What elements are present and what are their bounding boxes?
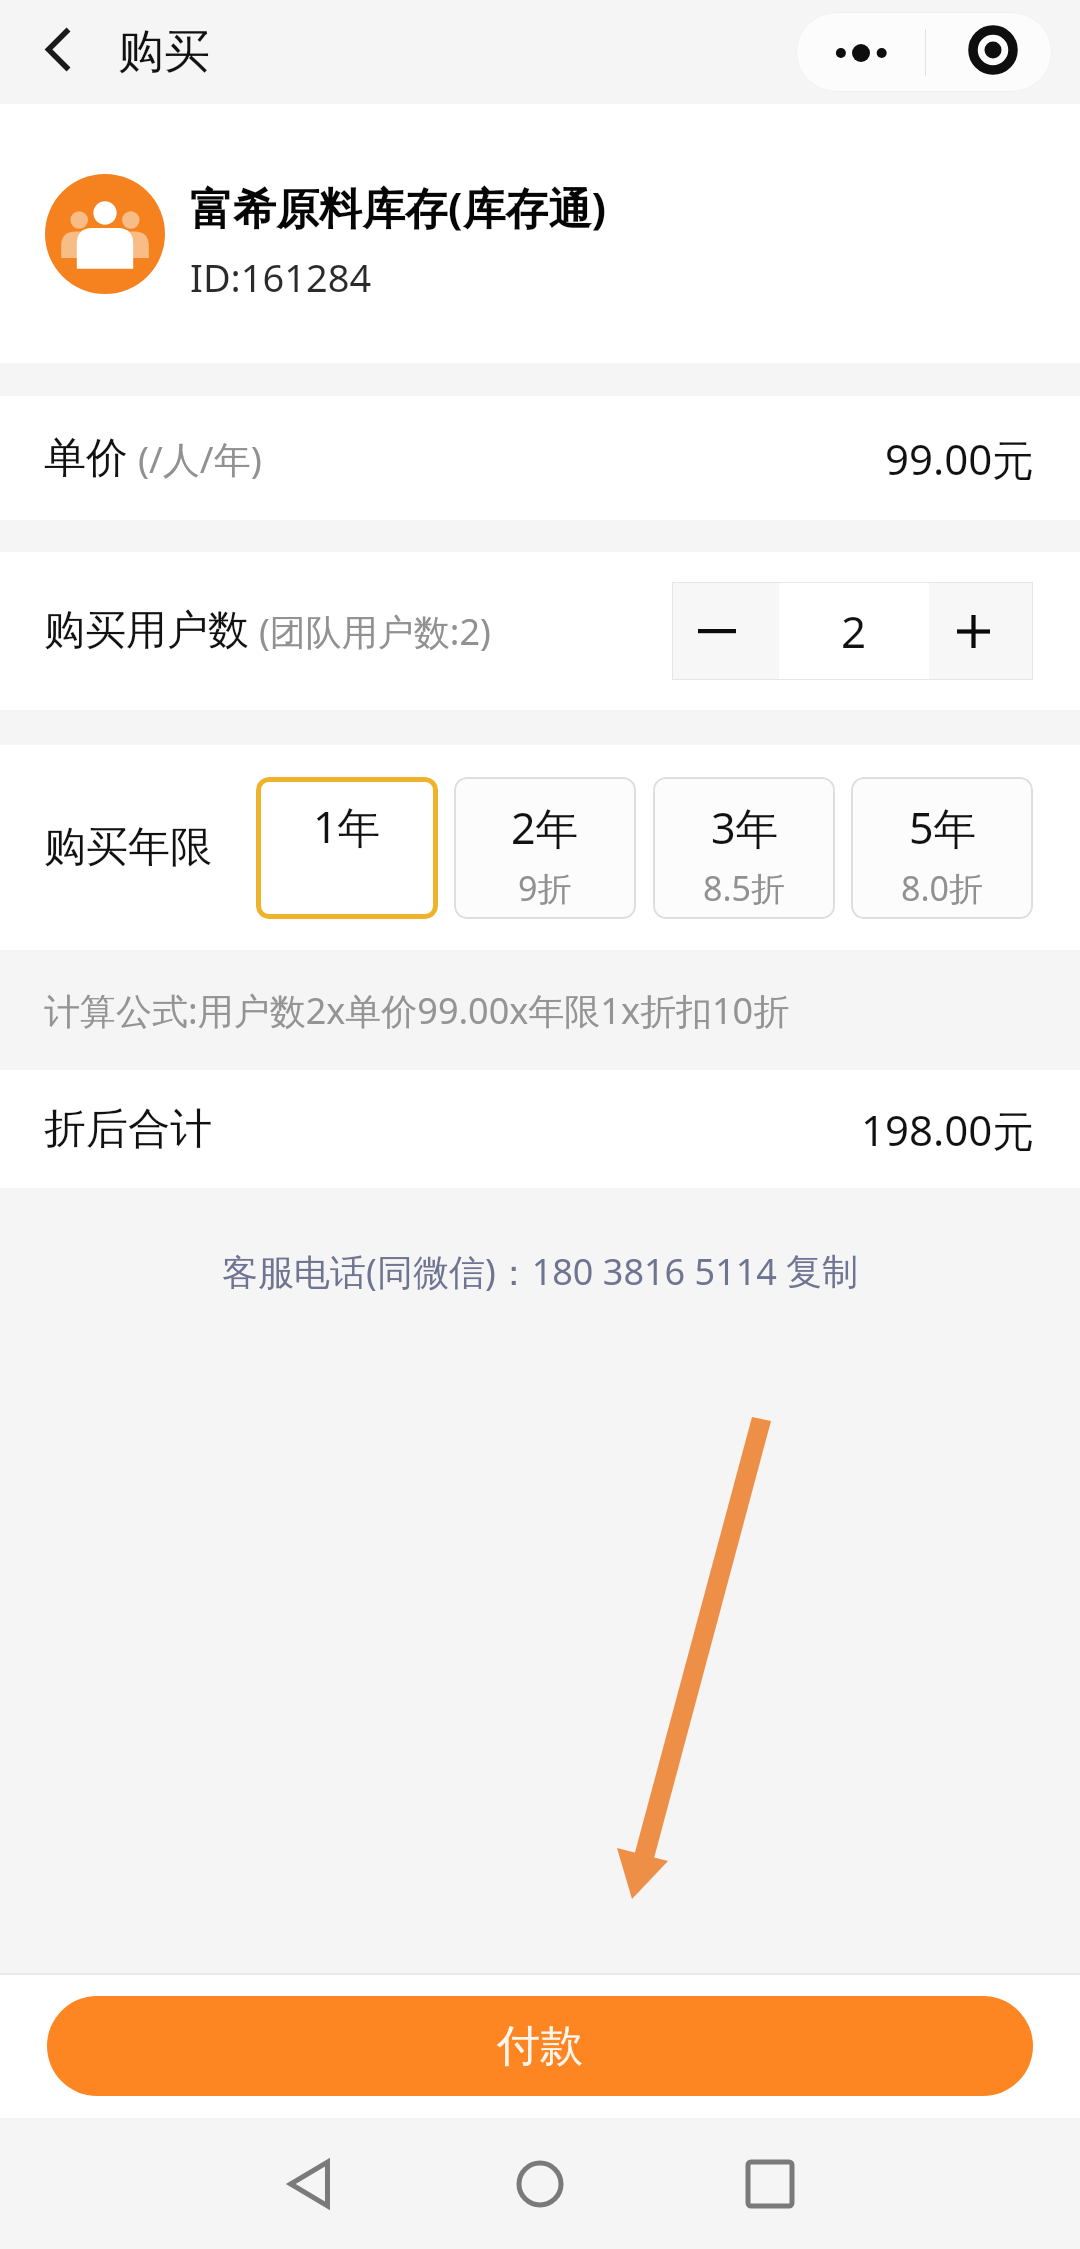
button[interactable]: 2年 [454,777,636,919]
staticText: 计算公式:用户数2x单价99.00x年限1x折扣10折 [44,986,790,1035]
staticText: 客服电话(同微信)：180 3816 5114 [222,1247,777,1296]
button[interactable]: Increase [929,582,1032,680]
staticText: 1年 [313,797,381,856]
staticText: 8.0折 [901,865,984,911]
staticText: 购买 [118,23,210,81]
staticText: 2 [841,601,867,661]
button[interactable]: 复制 [786,1249,858,1294]
button[interactable]: Back [14,8,102,96]
staticText: 5年 [909,798,977,857]
staticText: 2年 [511,798,579,857]
button[interactable]: Home [485,2129,595,2239]
button[interactable]: 5年 [851,777,1033,919]
staticText: (团队用户数:2) [259,607,491,656]
staticText: 3年 [711,798,779,857]
staticText: 99.00元 [885,430,1035,487]
staticText: 8.5折 [703,865,786,911]
staticText: (/人/年) [138,433,262,484]
staticText: 单价 [44,432,128,485]
staticText: 富希原料库存(库存通) [190,178,607,237]
staticText: ID:161284 [190,251,372,303]
button[interactable]: Decrease [672,582,779,680]
staticText: 付款 [497,2019,583,2073]
button[interactable]: Close mini program [926,12,1052,92]
button[interactable]: 1年 [256,777,438,919]
staticText: 198.00元 [861,1101,1035,1158]
staticText: 购买用户数 [44,605,249,657]
staticText: 折后合计 [44,1103,212,1156]
button[interactable]: Recent apps [715,2129,825,2239]
staticText: 9折 [518,865,572,911]
button[interactable]: More options [796,12,925,92]
button[interactable]: 付款 [47,1996,1033,2096]
staticText: 购买年限 [44,821,212,874]
button[interactable]: Back [255,2129,365,2239]
button[interactable]: 3年 [653,777,835,919]
